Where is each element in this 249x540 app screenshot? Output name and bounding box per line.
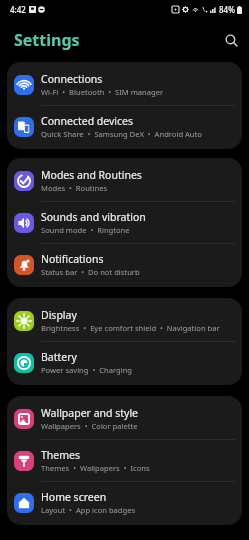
- button[interactable]: Battery: [7, 342, 242, 383]
- staticText: 84%: [219, 4, 235, 15]
- staticText: Sounds and vibration: [41, 210, 146, 224]
- staticText: Layout • App icon badges: [41, 505, 136, 515]
- staticText: Quick Share • Samsung DeX • Android Auto: [41, 129, 202, 139]
- staticText: Sound mode • Ringtone: [41, 225, 130, 235]
- button[interactable]: Themes: [7, 440, 242, 481]
- staticText: Brightness • Eye comfort shield • Naviga…: [41, 323, 220, 333]
- staticText: Modes and Routines: [41, 168, 142, 182]
- staticText: 4:42: [10, 4, 26, 15]
- staticText: Power saving • Charging: [41, 365, 133, 375]
- staticText: Notifications: [41, 252, 104, 266]
- staticText: Status bar • Do not disturb: [41, 267, 140, 277]
- staticText: Wallpapers • Color palette: [41, 421, 138, 431]
- button[interactable]: Connections: [7, 64, 242, 105]
- staticText: Themes • Wallpapers • Icons: [41, 463, 150, 473]
- button[interactable]: Search: [219, 28, 243, 52]
- staticText: Connections: [41, 72, 103, 86]
- button[interactable]: Modes and Routines: [7, 160, 242, 201]
- button[interactable]: Sounds and vibration: [7, 202, 242, 243]
- staticText: Modes • Routines: [41, 183, 108, 193]
- button[interactable]: Display: [7, 300, 242, 341]
- staticText: Wi-Fi • Bluetooth • SIM manager: [41, 87, 164, 97]
- staticText: Home screen: [41, 490, 107, 504]
- button[interactable]: Notifications: [7, 244, 242, 285]
- staticText: Themes: [41, 448, 81, 462]
- staticText: Display: [41, 308, 77, 322]
- staticText: Wallpaper and style: [41, 406, 139, 420]
- staticText: Connected devices: [41, 114, 134, 128]
- button[interactable]: Home screen: [7, 482, 242, 523]
- staticText: Battery: [41, 350, 77, 364]
- button[interactable]: Wallpaper and style: [7, 398, 242, 439]
- staticText: Settings: [14, 29, 80, 51]
- button[interactable]: Connected devices: [7, 106, 242, 147]
